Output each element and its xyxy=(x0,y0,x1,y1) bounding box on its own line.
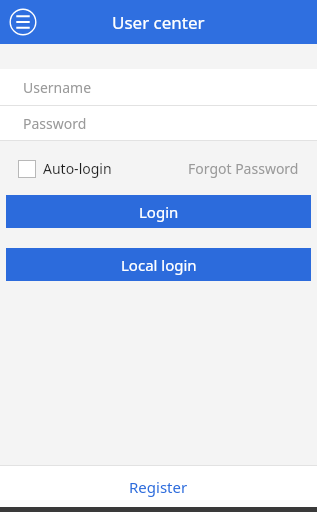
button[interactable]: Login xyxy=(6,195,311,228)
staticText: Local login xyxy=(121,255,197,275)
staticText: Register xyxy=(129,477,188,497)
staticText: Forgot Password xyxy=(188,159,299,178)
staticText: User center xyxy=(112,11,205,34)
button[interactable]: Username xyxy=(0,69,317,105)
staticText: Auto-login xyxy=(43,159,112,178)
button[interactable]: Auto-login xyxy=(18,159,112,178)
staticText: Login xyxy=(139,202,179,222)
button[interactable]: Register xyxy=(0,466,317,507)
button[interactable]: Forgot Password xyxy=(188,159,299,178)
staticText: Username xyxy=(23,78,92,97)
button[interactable]: Password xyxy=(0,106,317,140)
button[interactable]: Local login xyxy=(6,248,311,281)
staticText: Password xyxy=(23,114,87,133)
button[interactable]: Menu xyxy=(8,7,38,37)
